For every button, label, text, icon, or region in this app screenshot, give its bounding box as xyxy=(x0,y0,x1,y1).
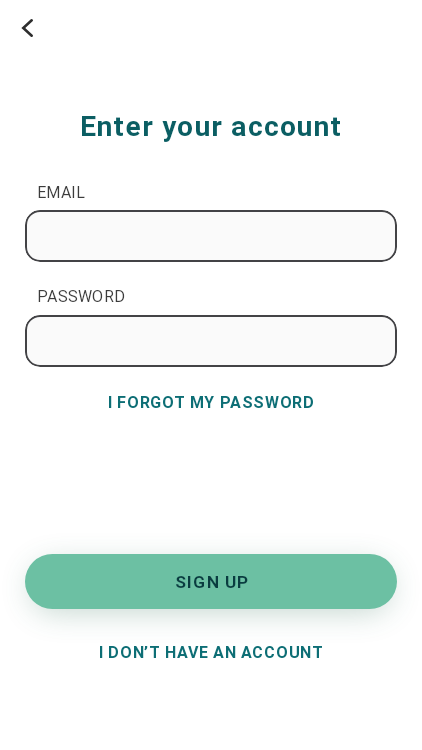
button[interactable]: I DON’T HAVE AN ACCOUNT xyxy=(0,635,422,669)
staticText: Enter your account xyxy=(0,110,422,143)
button[interactable]: Password xyxy=(25,315,397,367)
button[interactable]: I FORGOT MY PASSWORD xyxy=(0,385,422,419)
staticText: I FORGOT MY PASSWORD xyxy=(108,393,315,412)
button[interactable]: Email xyxy=(25,210,397,262)
staticText: EMAIL xyxy=(37,183,86,202)
staticText: SIGN UP xyxy=(175,572,250,592)
staticText: PASSWORD xyxy=(37,287,126,306)
button[interactable]: SIGN UP xyxy=(25,554,397,609)
staticText: I DON’T HAVE AN ACCOUNT xyxy=(99,643,324,662)
button[interactable]: Back xyxy=(9,10,45,46)
